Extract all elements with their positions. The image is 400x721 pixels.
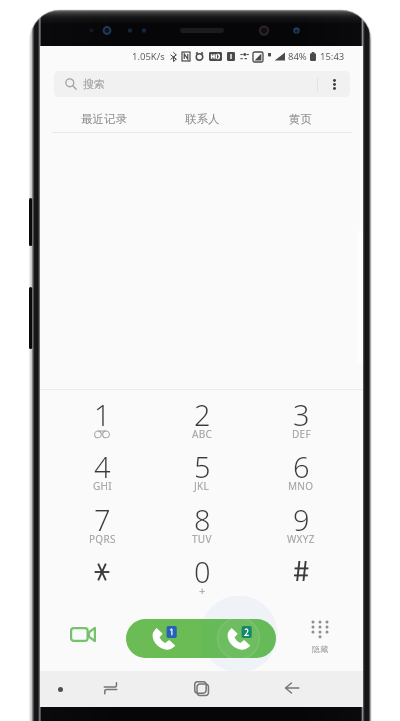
button[interactable]: 7 xyxy=(54,501,150,553)
staticText: 3 xyxy=(293,395,310,434)
staticText: 8 xyxy=(194,500,211,539)
staticText: 联系人 xyxy=(185,112,220,126)
button[interactable]: Home xyxy=(185,679,217,697)
staticText: 2 xyxy=(194,395,211,434)
staticText: ABC xyxy=(192,427,213,441)
button[interactable]: Recents xyxy=(94,679,126,697)
button[interactable]: 隐藏 xyxy=(294,611,346,661)
staticText: + xyxy=(199,583,206,598)
staticText: 6 xyxy=(293,447,310,486)
button[interactable]: 黄页 xyxy=(251,103,349,134)
button[interactable]: 4 xyxy=(54,448,150,500)
button[interactable]: 2 xyxy=(154,396,250,448)
staticText: 1 xyxy=(94,395,111,434)
button[interactable]: 最近记录 xyxy=(54,103,153,134)
staticText: PQRS xyxy=(89,532,116,546)
staticText: 7 xyxy=(94,500,111,539)
button[interactable]: Back xyxy=(276,679,308,697)
button[interactable]: 1 xyxy=(54,396,150,448)
button[interactable]: 搜索 xyxy=(54,71,350,97)
button[interactable]: 0 xyxy=(154,553,250,605)
button[interactable]: Call with SIM 2 xyxy=(201,619,276,658)
staticText: 84% xyxy=(288,50,307,63)
staticText: 最近记录 xyxy=(81,112,127,126)
staticText: 0 xyxy=(194,552,211,591)
button[interactable]: 6 xyxy=(253,448,349,500)
staticText: 隐藏 xyxy=(312,644,328,654)
button[interactable]: More options xyxy=(318,71,350,97)
button[interactable] xyxy=(54,553,150,605)
staticText: 5 xyxy=(194,447,211,486)
button[interactable]: 9 xyxy=(253,501,349,553)
staticText: 搜索 xyxy=(83,77,105,91)
staticText: JKL xyxy=(194,479,210,493)
button[interactable]: 3 xyxy=(253,396,349,448)
button[interactable] xyxy=(253,553,349,605)
staticText: 黄页 xyxy=(289,112,312,126)
button[interactable]: 联系人 xyxy=(153,103,251,134)
button[interactable]: Video call xyxy=(58,610,108,658)
staticText: 4 xyxy=(94,447,111,486)
staticText: MNO xyxy=(288,479,314,493)
button[interactable]: Call with SIM 1 xyxy=(126,619,201,658)
button[interactable]: 5 xyxy=(154,448,250,500)
staticText: WXYZ xyxy=(287,532,315,546)
staticText: 9 xyxy=(293,500,310,539)
button[interactable]: 8 xyxy=(154,501,250,553)
staticText: GHI xyxy=(93,479,112,493)
staticText: TUV xyxy=(192,532,212,546)
staticText: 1.05K/s xyxy=(132,50,165,63)
staticText: 15:43 xyxy=(320,50,345,63)
staticText: DEF xyxy=(292,427,311,441)
